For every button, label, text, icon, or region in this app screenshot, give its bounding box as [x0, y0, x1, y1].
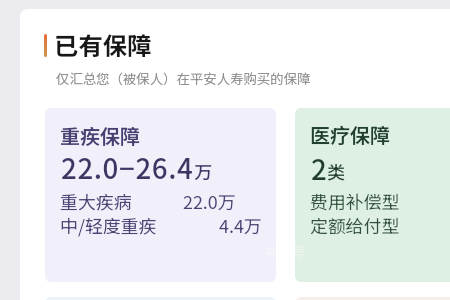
button[interactable]: 医疗保障 [295, 108, 450, 282]
staticText: 重大疾病 [60, 188, 132, 214]
staticText: 2 [311, 148, 327, 188]
button[interactable]: 重疾保障 [45, 108, 276, 282]
staticText: 费用补偿型 [310, 188, 400, 214]
staticText: 医疗保障 [310, 120, 390, 149]
staticText: 仅汇总您（被保人）在平安人寿购买的保障 [56, 68, 311, 87]
staticText: 类 [327, 158, 345, 184]
staticText: 万 [194, 158, 212, 184]
staticText: 4.4万 [219, 212, 262, 238]
staticText: 已有保障 [54, 27, 152, 62]
staticText: 定额给付型 [310, 212, 400, 238]
staticText: 中/轻度重疾 [60, 212, 157, 238]
staticText: 22.0万 [183, 188, 236, 214]
staticText: 号 [291, 241, 307, 263]
staticText: 重疾保障 [60, 121, 140, 150]
staticText: 中 [266, 241, 282, 263]
staticText: 22.0−26.4 [61, 147, 194, 187]
